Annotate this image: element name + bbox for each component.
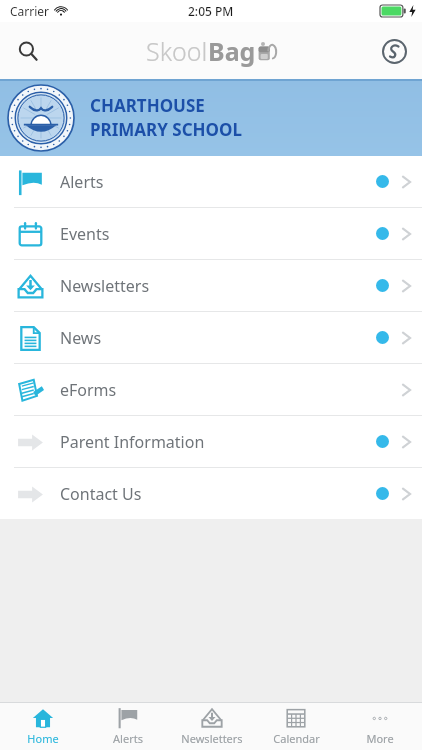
button[interactable]: Home — [0, 703, 85, 750]
staticText: eForms — [60, 379, 117, 401]
staticText: Newsletters — [60, 275, 150, 297]
staticText: Alerts — [113, 731, 143, 746]
staticText: Carrier — [10, 3, 50, 19]
staticText: Bag — [208, 34, 256, 68]
staticText: Parent Information — [60, 431, 205, 453]
staticText: PRIMARY SCHOOL — [90, 118, 243, 141]
staticText: Newsletters — [181, 731, 243, 746]
button[interactable]: Events — [0, 208, 422, 259]
staticText: Events — [60, 223, 110, 245]
staticText: 2:05 PM — [188, 3, 234, 19]
button[interactable]: Contact Us — [0, 468, 422, 519]
button[interactable]: Refresh — [372, 29, 416, 73]
staticText: Alerts — [60, 171, 104, 193]
button[interactable]: Newsletters — [170, 703, 254, 750]
staticText: Calendar — [273, 731, 320, 746]
button[interactable]: Newsletters — [0, 260, 422, 311]
button[interactable]: Parent Information — [0, 416, 422, 467]
staticText: Skool — [146, 34, 208, 68]
button[interactable]: Search — [6, 29, 50, 73]
staticText: Home — [27, 731, 59, 746]
button[interactable]: More — [338, 703, 422, 750]
button[interactable]: Calendar — [254, 703, 338, 750]
button[interactable]: eForms — [0, 364, 422, 415]
button[interactable]: News — [0, 312, 422, 363]
staticText: News — [60, 327, 102, 349]
button[interactable]: Alerts — [85, 703, 170, 750]
staticText: More — [366, 731, 394, 746]
staticText: Contact Us — [60, 483, 142, 505]
staticText: CHARTHOUSE — [90, 94, 205, 117]
button[interactable]: Alerts — [0, 156, 422, 207]
